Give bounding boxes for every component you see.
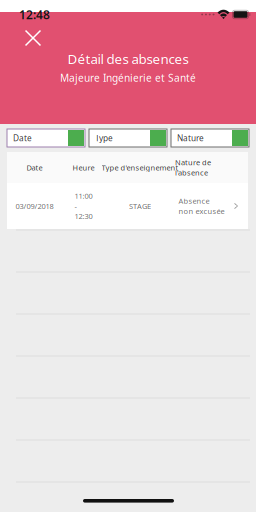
button[interactable]: Close (18, 23, 48, 53)
button[interactable]: Nature (171, 129, 249, 147)
staticText: Heure (72, 162, 94, 173)
staticText: Date (26, 162, 42, 173)
staticText: Type d'enseignement (101, 162, 178, 173)
button[interactable]: Date (7, 129, 85, 147)
staticText: Date (13, 132, 32, 144)
staticText: Nature de l'absence (175, 157, 211, 178)
staticText: STAGE (129, 201, 151, 211)
staticText: Détail des absences (67, 50, 188, 68)
staticText: Type (95, 132, 113, 144)
button[interactable]: 03/09/2018 (7, 183, 248, 229)
staticText: 11:00 - 12:30 (74, 191, 92, 221)
staticText: Absence non excusée (178, 196, 224, 216)
staticText: Nature (177, 132, 204, 144)
staticText: Majeure Ingénierie et Santé (60, 71, 196, 85)
staticText: 03/09/2018 (15, 201, 53, 211)
button[interactable]: Type (89, 129, 167, 147)
staticText: 12:48 (19, 6, 50, 22)
